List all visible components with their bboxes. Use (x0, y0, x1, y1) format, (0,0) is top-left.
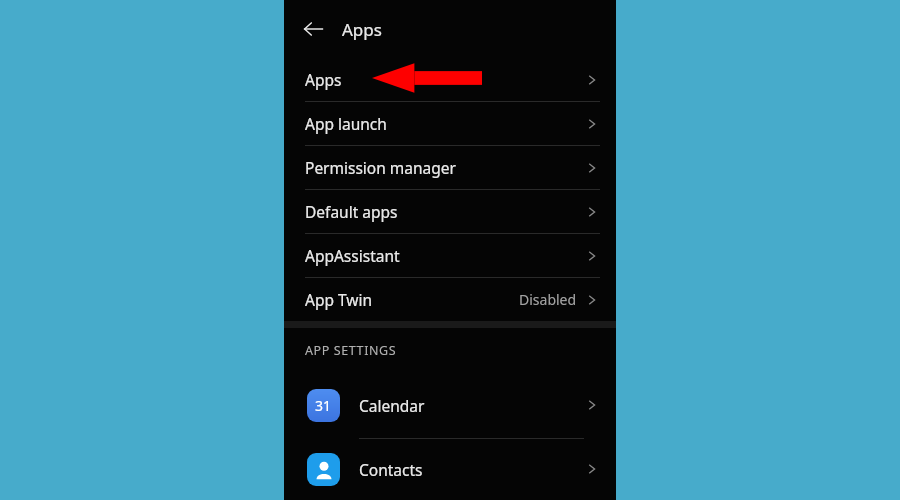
button[interactable]: AppAssistant (284, 233, 616, 277)
staticText: AppAssistant (305, 245, 400, 266)
staticText: App launch (305, 113, 387, 134)
staticText: Apps (342, 18, 382, 41)
staticText: APP SETTINGS (305, 342, 397, 359)
button[interactable]: Back (296, 12, 330, 46)
staticText: Disabled (519, 290, 577, 309)
staticText: Permission manager (305, 157, 456, 178)
staticText: Apps (305, 69, 342, 90)
button[interactable]: 31 (284, 372, 616, 438)
staticText: App Twin (305, 289, 373, 310)
button[interactable]: Default apps (284, 189, 616, 233)
staticText: Contacts (359, 459, 423, 480)
button[interactable]: Contacts (284, 438, 616, 500)
button[interactable]: Permission manager (284, 145, 616, 189)
button[interactable]: App Twin (284, 277, 616, 321)
staticText: Default apps (305, 201, 398, 222)
button[interactable]: Apps (284, 58, 616, 101)
staticText: 31 (315, 396, 332, 415)
staticText: Calendar (359, 395, 425, 416)
button[interactable]: App launch (284, 101, 616, 145)
